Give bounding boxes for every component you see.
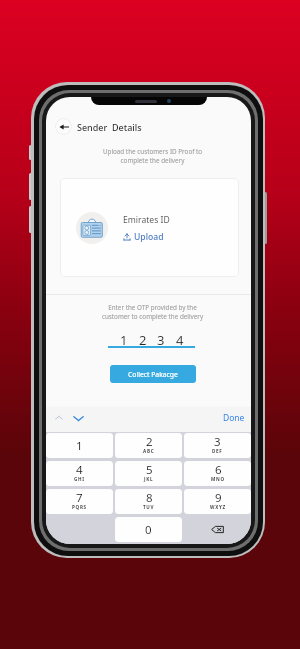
button[interactable]: Next field bbox=[70, 410, 86, 426]
staticText: 0 bbox=[145, 522, 152, 538]
staticText: DEF bbox=[212, 448, 223, 454]
button[interactable]: 7 bbox=[46, 489, 113, 514]
staticText: Upload bbox=[134, 231, 164, 243]
staticText: 1 bbox=[120, 331, 128, 349]
button[interactable]: Collect Pakacge bbox=[110, 365, 196, 383]
staticText: 3 bbox=[157, 331, 165, 349]
staticText: Sender Details bbox=[77, 121, 142, 133]
staticText: TUV bbox=[143, 504, 155, 510]
staticText: 1 bbox=[76, 438, 83, 454]
staticText: 3 bbox=[214, 434, 221, 450]
staticText: JKL bbox=[144, 476, 154, 482]
button[interactable]: Upload bbox=[123, 231, 164, 243]
button[interactable]: Done bbox=[221, 410, 247, 426]
button[interactable]: 2 bbox=[115, 433, 182, 458]
staticText: 6 bbox=[215, 462, 222, 478]
button[interactable]: 9 bbox=[184, 489, 251, 514]
staticText: PQRS bbox=[72, 504, 87, 510]
button[interactable]: 5 bbox=[115, 461, 182, 486]
staticText: Emirates ID bbox=[123, 214, 170, 226]
staticText: WXYZ bbox=[210, 504, 226, 510]
button[interactable]: Emirates ID bbox=[60, 178, 239, 277]
staticText: 4 bbox=[176, 331, 184, 349]
staticText: 8 bbox=[146, 490, 153, 506]
button[interactable]: 8 bbox=[115, 489, 182, 514]
staticText: 2 bbox=[139, 331, 147, 349]
button[interactable]: Previous field bbox=[51, 410, 67, 426]
staticText: ABC bbox=[143, 448, 155, 454]
staticText: 9 bbox=[215, 490, 222, 506]
staticText: Collect Pakacge bbox=[128, 370, 178, 379]
button[interactable]: 4 bbox=[46, 461, 113, 486]
staticText: 2 bbox=[146, 434, 153, 450]
staticText: MNO bbox=[211, 476, 225, 482]
staticText: 7 bbox=[76, 490, 83, 506]
button[interactable]: 1 bbox=[46, 433, 113, 458]
button[interactable]: Back bbox=[55, 118, 72, 135]
staticText: Done bbox=[223, 412, 245, 424]
button[interactable]: Backspace bbox=[184, 517, 251, 542]
button[interactable]: 0 bbox=[115, 517, 182, 542]
button[interactable]: 3 bbox=[184, 433, 251, 458]
staticText: GHI bbox=[74, 476, 85, 482]
button[interactable]: 6 bbox=[184, 461, 251, 486]
staticText: 5 bbox=[146, 462, 153, 478]
staticText: Upload the customers ID Proof to complet… bbox=[50, 147, 251, 165]
staticText: 4 bbox=[76, 462, 83, 478]
staticText: Enter the OTP provided by the customer t… bbox=[50, 303, 251, 321]
